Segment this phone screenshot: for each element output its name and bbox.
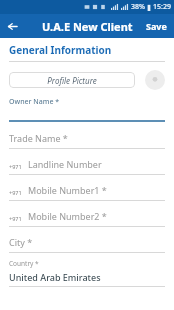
button[interactable]: Profile photo	[145, 70, 165, 90]
button[interactable]: Save	[139, 16, 174, 36]
staticText: Mobile Number1 *	[28, 184, 107, 196]
button[interactable]: Back	[0, 14, 24, 38]
staticText: City *	[9, 236, 33, 248]
staticText: +971	[9, 215, 22, 222]
staticText: Mobile Number2 *	[28, 210, 107, 222]
staticText: Landline Number	[28, 158, 102, 170]
staticText: Trade Name *	[9, 132, 68, 144]
staticText: U.A.E New Client	[42, 19, 133, 34]
staticText: +971	[9, 163, 22, 170]
button[interactable]: Profile Picture	[9, 72, 135, 88]
button[interactable]: +971	[9, 210, 165, 227]
staticText: Profile Picture	[47, 75, 97, 86]
staticText: +971	[9, 189, 22, 196]
staticText: 15:29	[153, 2, 171, 12]
staticText: Save	[146, 20, 167, 32]
staticText: Owner Name *	[9, 97, 60, 107]
button[interactable]: +971	[9, 158, 165, 175]
button[interactable]: +971	[9, 184, 165, 201]
button[interactable]: City *	[9, 236, 165, 253]
button[interactable]: Trade Name *	[9, 132, 165, 149]
staticText: General Information	[9, 43, 112, 57]
staticText: Country *	[9, 259, 39, 268]
button[interactable]: Owner Name *	[9, 97, 165, 122]
button[interactable]: Country *	[9, 259, 165, 287]
staticText: United Arab Emirates	[9, 271, 101, 283]
staticText: 38%	[131, 2, 145, 12]
